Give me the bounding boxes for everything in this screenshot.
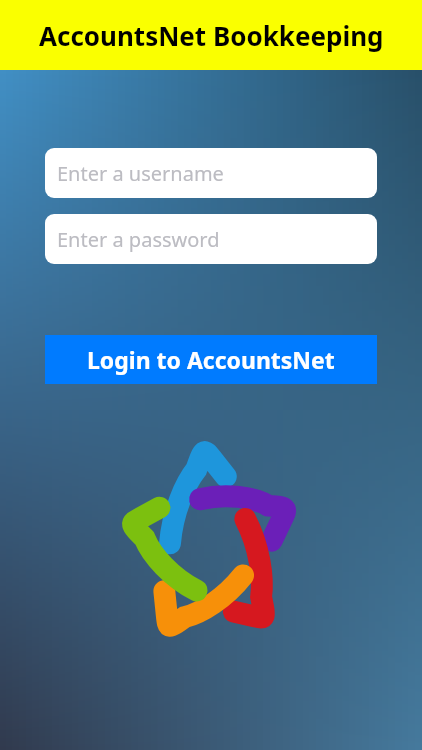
staticText: Enter a password [57, 226, 220, 253]
staticText: Login to AccountsNet [87, 344, 335, 375]
button[interactable]: Enter a password [45, 214, 377, 264]
staticText: AccountsNet Bookkeeping [39, 18, 384, 53]
button[interactable]: Enter a username [45, 148, 377, 198]
button[interactable]: Login to AccountsNet [45, 335, 377, 384]
staticText: Enter a username [57, 160, 224, 187]
